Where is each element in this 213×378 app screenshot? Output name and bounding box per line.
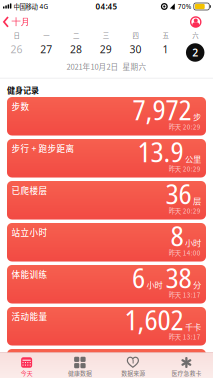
button[interactable]: 步行 + 跑步距离 [7,139,206,177]
staticText: 昨天 13:17 [169,290,201,299]
staticText: 小时 [146,279,162,291]
staticText: 昨天 13:17 [169,332,201,341]
staticText: 昨天 20:29 [169,164,201,173]
staticText: 29 [100,42,112,56]
button[interactable]: 个人资料 [190,16,201,28]
staticText: 二 [73,31,79,40]
button[interactable]: 站立小时 [7,223,206,261]
staticText: 30 [130,42,142,56]
button[interactable]: 10月1日 [150,31,180,61]
staticText: 已爬楼层 [11,184,47,196]
button[interactable]: 数据来源 [106,357,160,377]
button[interactable]: 医疗急救卡 [160,357,213,377]
staticText: 中国移动 [13,2,37,11]
staticText: 健康数据 [68,369,92,377]
staticText: 今天 [21,369,33,377]
button[interactable]: 10月26日 [1,31,31,61]
staticText: 4G [39,2,48,11]
staticText: 一 [43,31,49,40]
staticText: 26 [10,42,22,56]
staticText: 健身记录 [7,84,39,96]
staticText: 千卡 [185,321,201,333]
staticText: 步行 + 跑步距离 [11,142,74,154]
staticText: 六 [192,31,198,40]
staticText: 日 [13,31,19,40]
button[interactable]: 步数 [7,97,206,135]
staticText: 步 [193,111,201,123]
button[interactable]: 健康数据 [53,357,106,377]
staticText: 公里 [185,153,201,165]
button[interactable]: 今天 [0,357,53,377]
staticText: 13.9 [137,132,183,170]
staticText: 70% [178,2,192,11]
button[interactable]: 已爬楼层 [7,181,206,219]
staticText: 小时 [185,237,201,249]
staticText: 2 [192,45,198,60]
staticText: 04:45 [95,1,117,12]
staticText: 医疗急救卡 [171,369,201,377]
staticText: 36 [165,174,191,212]
staticText: 27 [40,42,52,56]
staticText: 四 [133,31,139,40]
staticText: 昨天 14:00 [169,248,201,257]
staticText: 1 [162,42,168,56]
staticText: 昨天 20:29 [169,206,201,215]
staticText: 分 [193,279,201,291]
button[interactable]: 10月27日 [31,31,61,61]
staticText: 层 [193,195,201,207]
staticText: 数据来源 [121,369,145,377]
button[interactable]: 返回 十月 [0,16,29,28]
staticText: 站立小时 [11,226,47,238]
staticText: 活动能量 [11,310,47,322]
staticText: 体能训练 [11,268,47,280]
staticText: 五 [162,31,168,40]
staticText: 6 [132,258,145,296]
staticText: 1,602 [124,300,183,338]
staticText: 38 [165,258,191,296]
button[interactable]: 10月2日 [180,31,210,61]
staticText: 8 [170,216,183,254]
button[interactable]: 10月30日 [121,31,150,61]
staticText: 7,972 [132,90,191,128]
button[interactable]: 活动能量 [7,307,206,345]
button[interactable]: 10月29日 [91,31,121,61]
button[interactable]: 体能训练 [7,265,206,303]
staticText: 28 [70,42,82,56]
staticText: 三 [103,31,109,40]
staticText: 十月 [11,16,29,28]
staticText: 步数 [11,100,29,112]
button[interactable]: 10月28日 [61,31,91,61]
staticText: 昨天 20:29 [169,122,201,131]
staticText: 2021年10月2日 星期六 [66,61,146,72]
